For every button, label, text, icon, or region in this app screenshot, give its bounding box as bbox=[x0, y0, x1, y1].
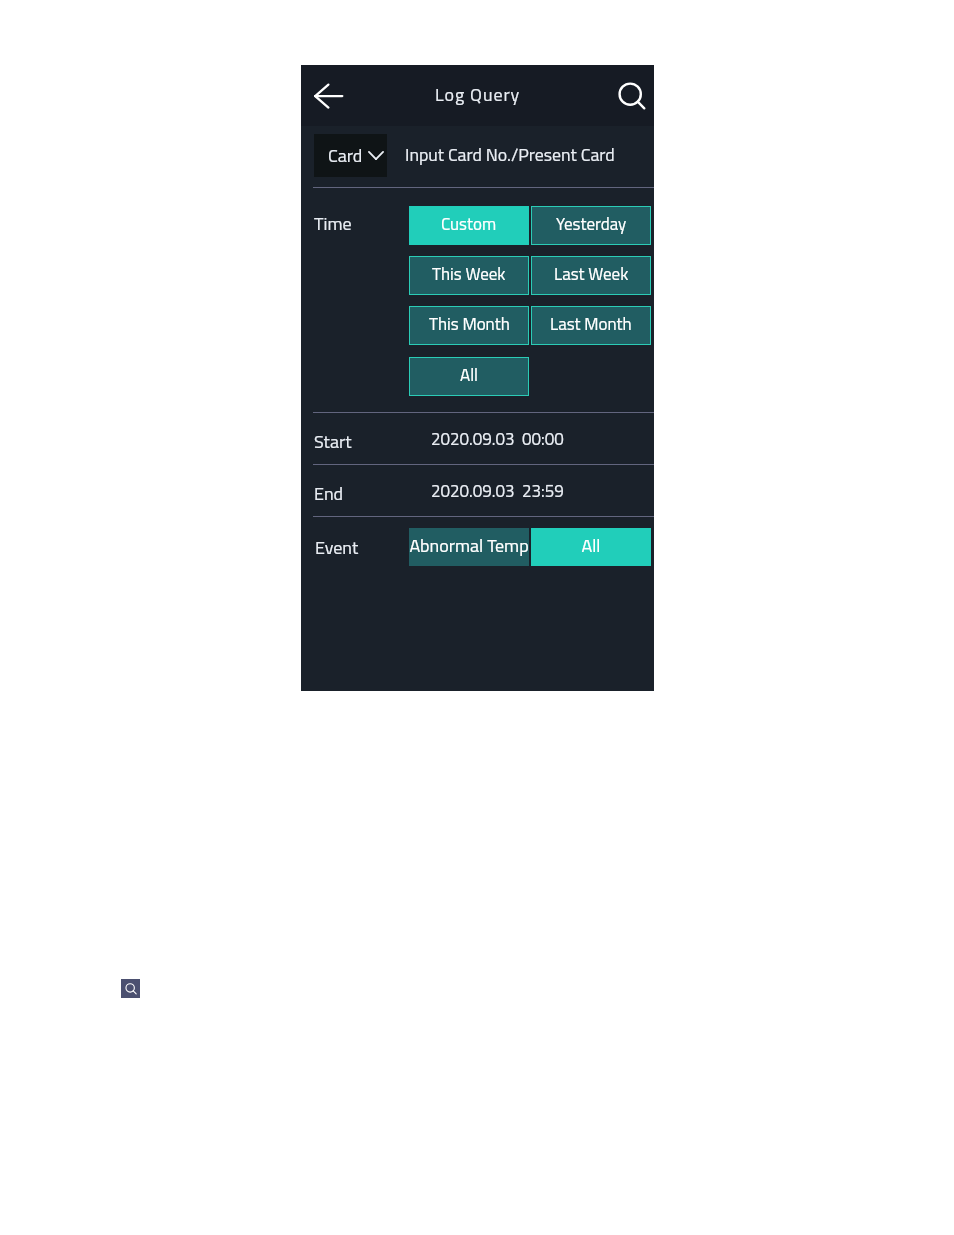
button[interactable] bbox=[301, 413, 654, 464]
button[interactable]: Abnormal Temp bbox=[409, 528, 529, 566]
staticText: All bbox=[460, 362, 478, 388]
button[interactable]: Last Month bbox=[531, 306, 651, 345]
staticText: This Week bbox=[432, 261, 506, 287]
staticText: Card bbox=[328, 142, 363, 169]
button[interactable]: Back bbox=[301, 73, 349, 117]
button[interactable]: This Month bbox=[409, 306, 529, 345]
staticText: Yesterday bbox=[556, 211, 627, 237]
staticText: 2020.09.03 23:59 bbox=[431, 478, 564, 504]
staticText: Last Month bbox=[550, 311, 632, 337]
button[interactable]: Input Card No./Present Card bbox=[396, 134, 646, 177]
staticText: Input Card No./Present Card bbox=[405, 141, 615, 168]
staticText: Last Week bbox=[554, 261, 629, 287]
button[interactable] bbox=[301, 465, 654, 516]
staticText: Custom bbox=[441, 211, 497, 237]
staticText: End bbox=[314, 480, 344, 507]
button[interactable]: Yesterday bbox=[531, 206, 651, 245]
staticText: Log Query bbox=[435, 81, 521, 108]
button[interactable]: Card bbox=[314, 134, 387, 177]
button[interactable]: Last Week bbox=[531, 256, 651, 295]
button[interactable]: All bbox=[531, 528, 651, 566]
staticText: Time bbox=[314, 210, 352, 237]
staticText: Start bbox=[314, 428, 352, 455]
button[interactable]: Custom bbox=[409, 206, 529, 245]
staticText: 2020.09.03 00:00 bbox=[431, 426, 564, 452]
button[interactable]: Search bbox=[604, 72, 650, 118]
staticText: Event bbox=[315, 534, 359, 561]
staticText: Abnormal Temp bbox=[409, 532, 529, 559]
staticText: All bbox=[581, 532, 601, 559]
staticText: This Month bbox=[429, 311, 510, 337]
button[interactable]: All bbox=[409, 357, 529, 396]
button[interactable]: This Week bbox=[409, 256, 529, 295]
button[interactable]: Search bbox=[121, 979, 140, 998]
